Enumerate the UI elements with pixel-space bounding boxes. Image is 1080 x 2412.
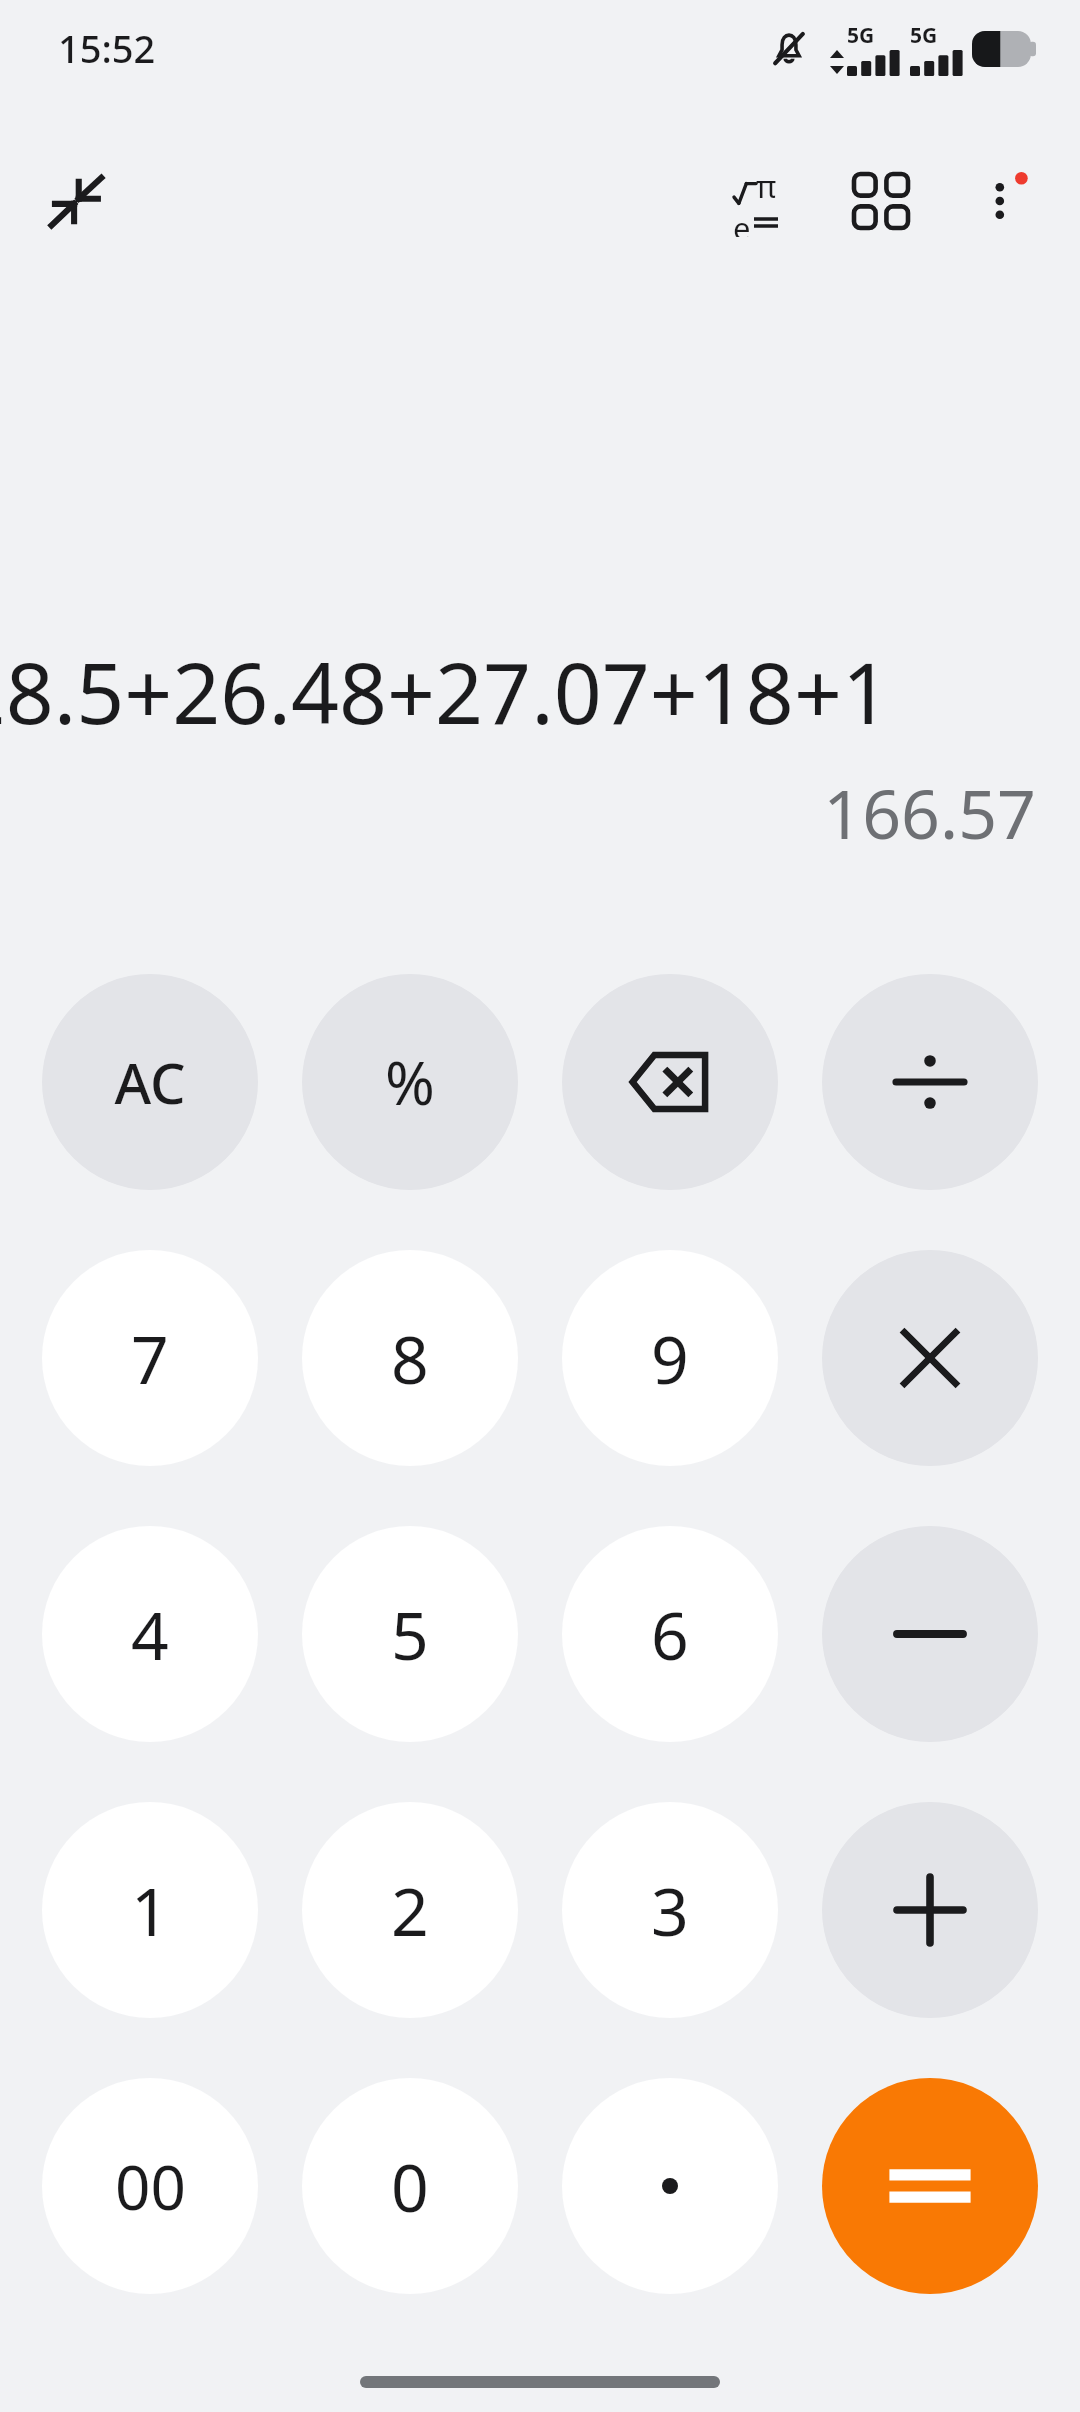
button[interactable]: 5 [302, 1526, 518, 1742]
button[interactable]: 00 [42, 2078, 258, 2294]
button[interactable]: % [302, 974, 518, 1190]
staticText: 5G [847, 21, 875, 50]
button[interactable]: 7 [42, 1250, 258, 1466]
staticText: 5G [910, 21, 938, 50]
button[interactable]: 9 [562, 1250, 778, 1466]
staticText: 2 [391, 1865, 429, 1955]
staticText: 00 [115, 2144, 186, 2228]
button[interactable]: 2 [302, 1802, 518, 2018]
button[interactable]: Plus [822, 1802, 1038, 2018]
button[interactable]: 6 [562, 1526, 778, 1742]
staticText: 1 [131, 1865, 169, 1955]
button[interactable]: 55+28.5+26.48+27.07+18+10 [0, 634, 1080, 748]
staticText: e [733, 207, 751, 237]
button[interactable]: Minus [822, 1526, 1038, 1742]
button[interactable]: Scientific mode [700, 146, 810, 256]
button[interactable]: Apps [826, 146, 936, 256]
button[interactable]: 3 [562, 1802, 778, 2018]
staticText: 55+28.5+26.48+27.07+18+10 [0, 634, 890, 748]
button[interactable]: 4 [42, 1526, 258, 1742]
button[interactable]: Multiply [822, 1250, 1038, 1466]
button[interactable]: Backspace [562, 974, 778, 1190]
staticText: 7 [131, 1313, 169, 1403]
button[interactable]: Decimal point [562, 2078, 778, 2294]
staticText: 15:52 [58, 22, 156, 74]
button[interactable]: Divide [822, 974, 1038, 1190]
staticText: 0 [391, 2141, 429, 2231]
button[interactable]: More options [952, 146, 1062, 256]
staticText: 9 [651, 1313, 689, 1403]
staticText: 8 [391, 1313, 429, 1403]
button[interactable]: AC [42, 974, 258, 1190]
staticText: AC [114, 1044, 186, 1120]
button[interactable]: 166.57 [823, 766, 1036, 859]
button[interactable]: 0 [302, 2078, 518, 2294]
button[interactable]: 1 [42, 1802, 258, 2018]
button[interactable]: Collapse [22, 146, 132, 256]
button[interactable]: Equals [822, 2078, 1038, 2294]
staticText: 4 [131, 1589, 169, 1679]
staticText: % [385, 1041, 435, 1123]
staticText: 5 [391, 1589, 429, 1679]
staticText: 6 [651, 1589, 689, 1679]
staticText: 3 [651, 1865, 689, 1955]
staticText: π [756, 165, 777, 207]
button[interactable]: 8 [302, 1250, 518, 1466]
